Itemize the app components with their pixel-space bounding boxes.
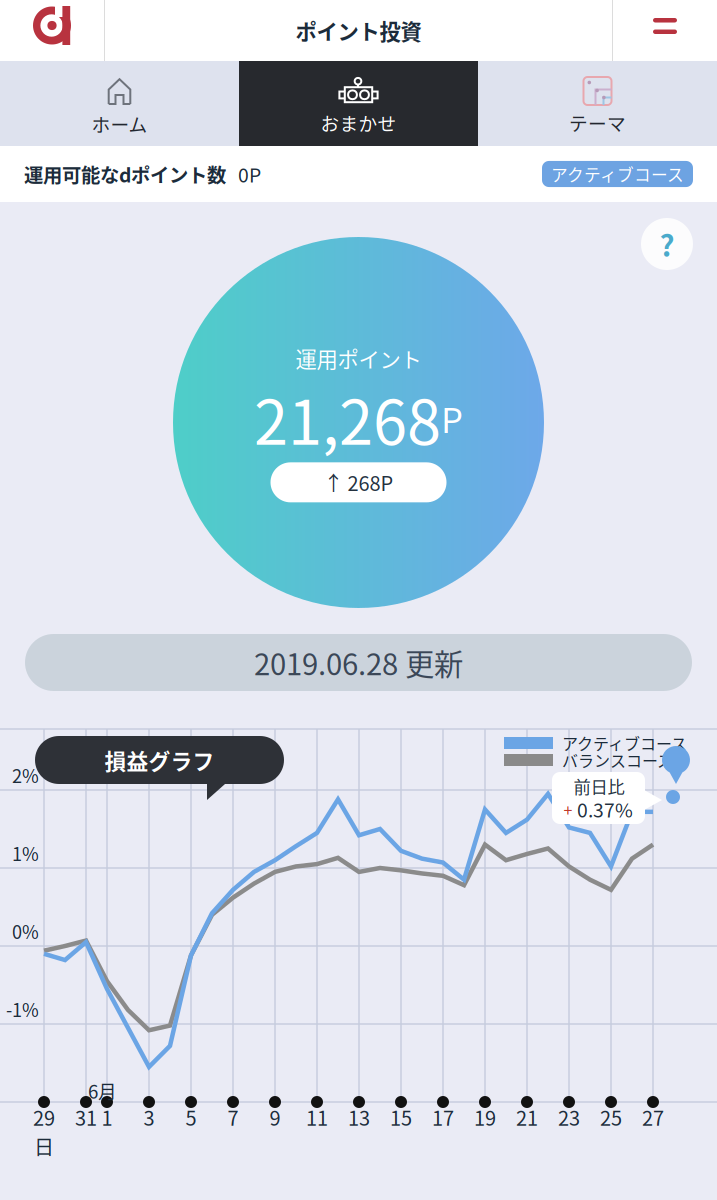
staticText: 0.37% (577, 795, 633, 823)
staticText: 0% (12, 918, 39, 944)
button[interactable]: Help (641, 218, 693, 270)
staticText: 21,268 (254, 373, 441, 462)
staticText: 日 (34, 1131, 54, 1160)
staticText: テーマ (569, 109, 626, 136)
staticText: 3 (143, 1102, 154, 1131)
staticText: 11 (306, 1102, 328, 1131)
staticText: おまかせ (320, 109, 396, 136)
staticText: -1% (6, 996, 39, 1022)
staticText: 2019.06.28 更新 (254, 641, 463, 684)
staticText: ホーム (91, 110, 147, 137)
staticText: 15 (390, 1102, 412, 1131)
staticText: 1 (101, 1102, 112, 1131)
staticText: 13 (348, 1102, 370, 1131)
button[interactable]: アクティブコース (542, 161, 693, 187)
staticText: 運用ポイント (295, 343, 421, 373)
button[interactable]: Menu (613, 0, 717, 61)
staticText: アクティブコース (551, 162, 684, 186)
staticText: 21 (516, 1102, 538, 1131)
staticText: 前日比 (573, 773, 624, 799)
staticText: バランスコース (562, 748, 673, 772)
staticText: 2% (12, 762, 39, 788)
staticText: アクティブコース (562, 731, 687, 755)
staticText: + (563, 797, 572, 821)
staticText: ポイント投資 (295, 15, 421, 46)
staticText: 6月 (88, 1077, 117, 1104)
staticText: 17 (432, 1102, 454, 1131)
staticText: 23 (558, 1102, 580, 1131)
staticText: 7 (227, 1102, 238, 1131)
staticText: 1% (12, 840, 39, 866)
staticText: 25 (600, 1102, 622, 1131)
button[interactable]: ホーム (0, 61, 239, 146)
button[interactable]: テーマ (478, 61, 717, 146)
staticText: ? (659, 223, 674, 265)
button[interactable]: docomo (0, 0, 104, 61)
staticText: P (441, 393, 463, 443)
button[interactable]: おまかせ (239, 61, 478, 146)
staticText: 31 (75, 1102, 97, 1131)
staticText: 0P (226, 160, 261, 188)
staticText: ↑ 268P (323, 468, 393, 497)
staticText: 5 (185, 1102, 196, 1131)
staticText: 運用可能なdポイント数 (24, 160, 226, 188)
staticText: 9 (269, 1102, 280, 1131)
staticText: 19 (474, 1102, 496, 1131)
staticText: 損益グラフ (104, 744, 214, 776)
staticText: 29 (33, 1102, 55, 1131)
staticText: 27 (642, 1102, 664, 1131)
